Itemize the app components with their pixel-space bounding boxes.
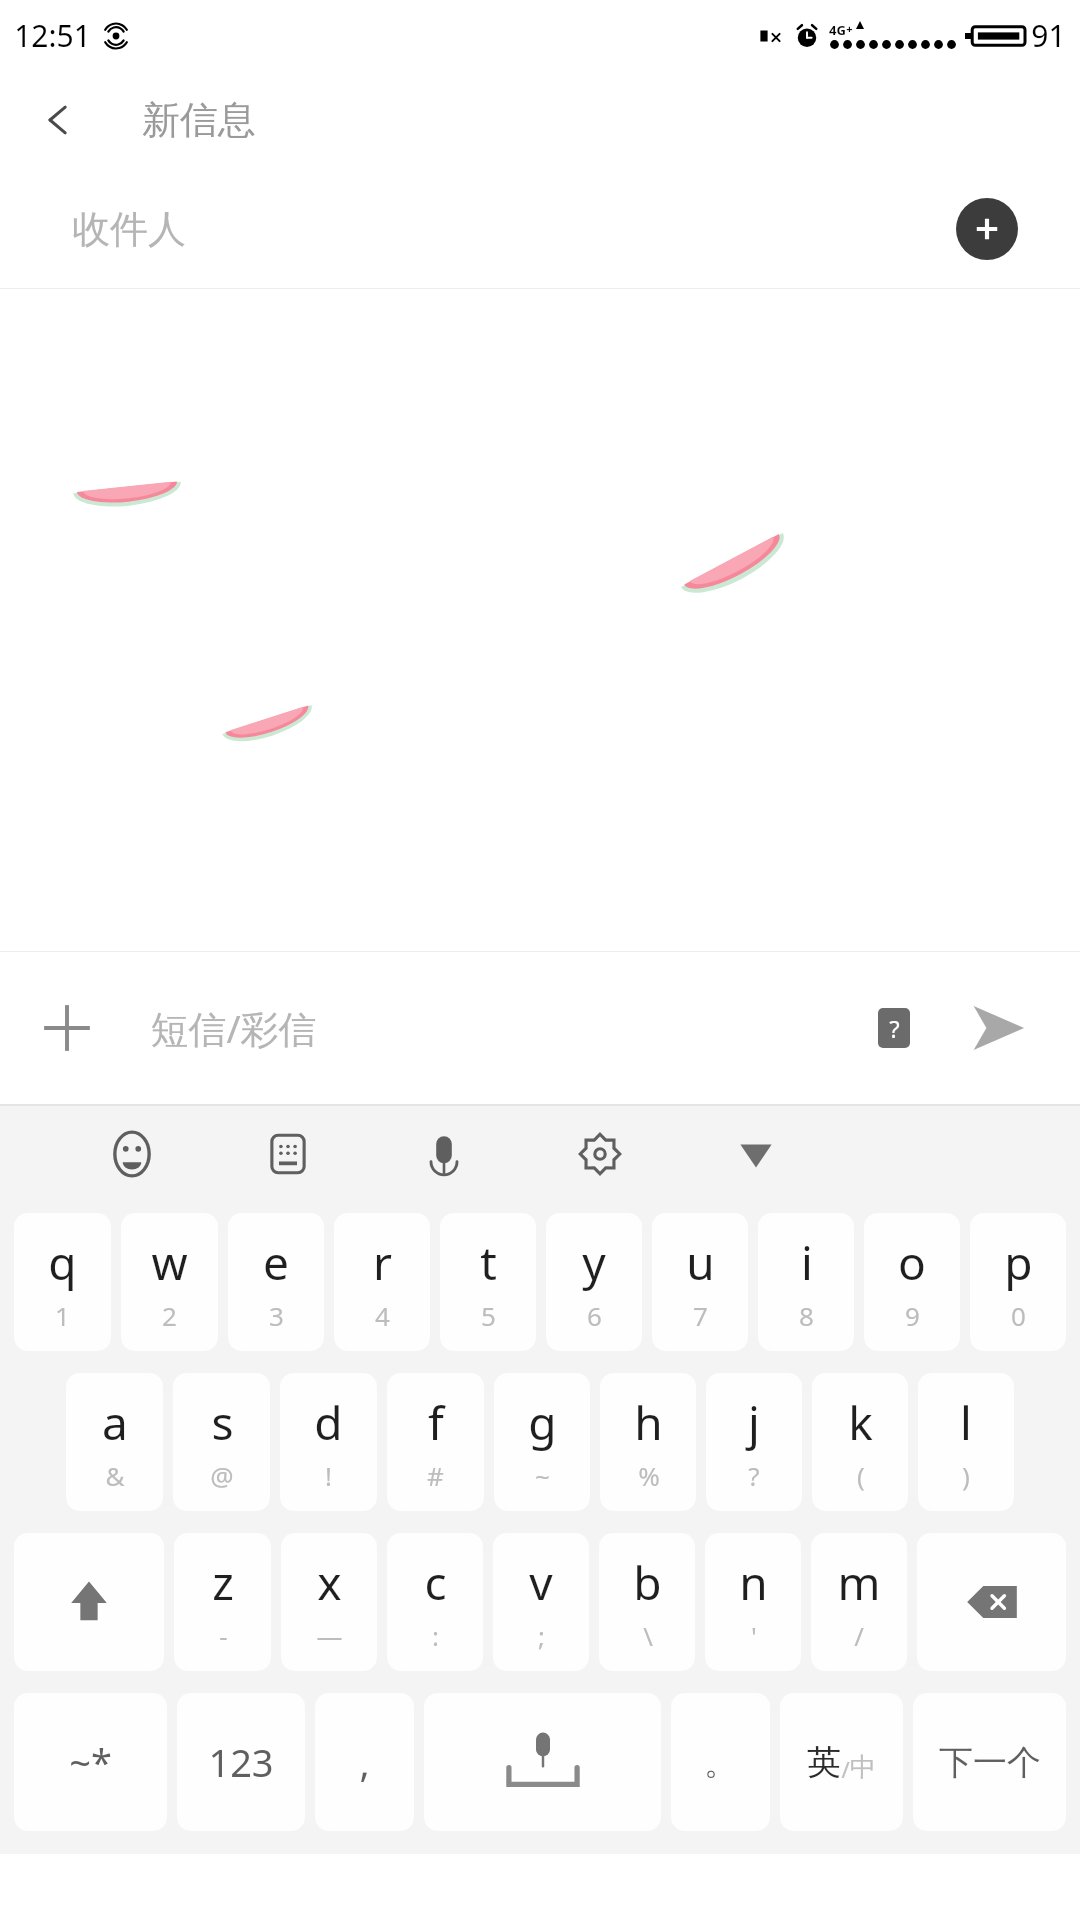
button[interactable]: Back: [18, 80, 98, 160]
staticText: 下一个: [939, 1741, 1041, 1784]
staticText: +: [846, 21, 853, 36]
button[interactable]: h: [600, 1373, 696, 1511]
staticText: 4G: [829, 21, 846, 39]
button[interactable]: m: [811, 1533, 907, 1671]
staticText: 。: [704, 1741, 738, 1784]
button[interactable]: 。: [671, 1693, 770, 1831]
staticText: 中: [850, 1751, 876, 1784]
staticText: a: [102, 1391, 128, 1454]
button[interactable]: w: [121, 1213, 218, 1351]
staticText: /: [854, 1618, 864, 1653]
button[interactable]: ,: [315, 1693, 414, 1831]
staticText: 12:51: [14, 15, 91, 56]
staticText: g: [528, 1391, 557, 1454]
staticText: c: [424, 1551, 447, 1614]
button[interactable]: e: [228, 1213, 324, 1351]
staticText: t: [480, 1231, 497, 1294]
staticText: ;: [538, 1618, 545, 1653]
staticText: -: [219, 1618, 228, 1653]
staticText: \: [643, 1618, 653, 1653]
button[interactable]: q: [14, 1213, 111, 1351]
staticText: 8: [799, 1298, 814, 1333]
button[interactable]: s: [173, 1373, 270, 1511]
button[interactable]: y: [546, 1213, 642, 1351]
button[interactable]: Voice input: [400, 1110, 488, 1198]
staticText: l: [960, 1391, 972, 1454]
button[interactable]: f: [387, 1373, 484, 1511]
button[interactable]: p: [970, 1213, 1066, 1351]
staticText: 7: [693, 1298, 708, 1333]
staticText: 91: [1031, 15, 1066, 56]
button[interactable]: z: [174, 1533, 271, 1671]
staticText: h: [634, 1391, 663, 1454]
staticText: p: [1004, 1231, 1033, 1294]
button[interactable]: n: [705, 1533, 801, 1671]
button[interactable]: Settings: [556, 1110, 644, 1198]
staticText: u: [686, 1231, 715, 1294]
button[interactable]: k: [812, 1373, 908, 1511]
button[interactable]: o: [864, 1213, 960, 1351]
staticText: 6: [587, 1298, 602, 1333]
button[interactable]: Add recipient: [956, 198, 1018, 260]
staticText: m: [837, 1551, 881, 1614]
staticText: 新信息: [142, 96, 256, 144]
staticText: :: [432, 1618, 439, 1653]
button[interactable]: g: [494, 1373, 590, 1511]
button[interactable]: Send: [960, 990, 1036, 1066]
button[interactable]: u: [652, 1213, 748, 1351]
button[interactable]: Message info: [870, 1004, 918, 1052]
button[interactable]: Hide keyboard: [712, 1110, 800, 1198]
staticText: %: [638, 1458, 660, 1493]
button[interactable]: Shift: [14, 1533, 164, 1671]
staticText: 英: [807, 1741, 841, 1784]
staticText: d: [314, 1391, 343, 1454]
button[interactable]: r: [334, 1213, 430, 1351]
button[interactable]: v: [493, 1533, 589, 1671]
button[interactable]: 123: [177, 1693, 305, 1831]
staticText: f: [428, 1391, 444, 1454]
staticText: 123: [208, 1736, 274, 1788]
button[interactable]: Switch language: [780, 1693, 903, 1831]
button[interactable]: t: [440, 1213, 536, 1351]
button[interactable]: d: [280, 1373, 377, 1511]
button[interactable]: 下一个: [913, 1693, 1066, 1831]
staticText: q: [48, 1231, 77, 1294]
staticText: k: [848, 1391, 873, 1454]
staticText: 5: [481, 1298, 496, 1333]
button[interactable]: x: [281, 1533, 377, 1671]
staticText: 1: [55, 1298, 70, 1333]
staticText: &: [105, 1458, 125, 1493]
staticText: n: [739, 1551, 768, 1614]
staticText: !: [325, 1458, 332, 1493]
button[interactable]: a: [66, 1373, 163, 1511]
staticText: s: [211, 1391, 234, 1454]
button[interactable]: c: [387, 1533, 483, 1671]
staticText: b: [633, 1551, 662, 1614]
staticText: 4: [375, 1298, 390, 1333]
staticText: r: [373, 1231, 392, 1294]
staticText: /: [841, 1754, 850, 1784]
staticText: v: [529, 1551, 553, 1614]
staticText: 0: [1011, 1298, 1026, 1333]
button[interactable]: Keyboard layout: [244, 1110, 332, 1198]
staticText: x: [317, 1551, 342, 1614]
button[interactable]: Backspace: [917, 1533, 1066, 1671]
staticText: ?: [748, 1458, 760, 1493]
staticText: #: [427, 1458, 444, 1493]
button[interactable]: b: [599, 1533, 695, 1671]
staticText: ?: [889, 1012, 900, 1045]
button[interactable]: Add attachment: [26, 987, 108, 1069]
staticText: 3: [269, 1298, 284, 1333]
button[interactable]: l: [918, 1373, 1014, 1511]
staticText: 2: [162, 1298, 177, 1333]
staticText: e: [263, 1231, 289, 1294]
button[interactable]: i: [758, 1213, 854, 1351]
button[interactable]: j: [706, 1373, 802, 1511]
button[interactable]: ~*: [14, 1693, 167, 1831]
staticText: 收件人: [72, 205, 186, 253]
staticText: ~: [535, 1458, 550, 1493]
staticText: z: [212, 1551, 234, 1614]
button[interactable]: Emoji: [88, 1110, 176, 1198]
button[interactable]: Space: [424, 1693, 661, 1831]
staticText: —: [316, 1618, 343, 1653]
